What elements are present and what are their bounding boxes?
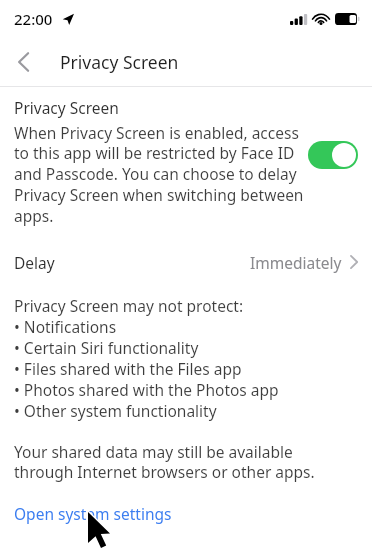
staticText: Privacy Screen may not protect: (14, 295, 244, 316)
staticText: Immediately (250, 252, 342, 273)
staticText: Privacy Screen (14, 97, 119, 118)
staticText: 22:00 (14, 9, 53, 29)
button[interactable]: Privacy Screen toggle, on (308, 141, 358, 169)
staticText: Your shared data may still be available … (14, 441, 334, 483)
staticText: • Certain Siri functionality (14, 337, 199, 358)
staticText: • Photos shared with the Photos app (14, 379, 279, 400)
staticText: When Privacy Screen is enabled, access t… (14, 122, 304, 227)
button[interactable]: Delay (0, 247, 372, 277)
button[interactable]: Back (0, 39, 46, 85)
staticText: Open system settings (14, 503, 172, 524)
staticText: • Other system functionality (14, 400, 217, 421)
staticText: Delay (14, 252, 55, 273)
button[interactable]: Open system settings (14, 503, 172, 524)
staticText: • Notifications (14, 316, 117, 337)
staticText: • Files shared with the Files app (14, 358, 242, 379)
staticText: Privacy Screen (60, 50, 179, 74)
